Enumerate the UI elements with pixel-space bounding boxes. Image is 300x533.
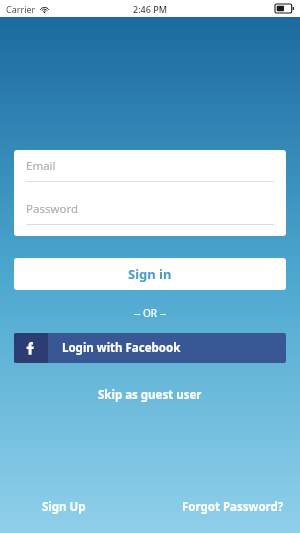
staticText: Sign in	[128, 265, 172, 283]
button[interactable]: Password	[26, 193, 274, 224]
staticText: Carrier	[6, 3, 36, 15]
staticText: 2:46 PM	[133, 3, 167, 15]
button[interactable]: Facebook	[14, 333, 286, 363]
staticText: Skip as guest user	[98, 387, 202, 403]
staticText: -- OR --	[134, 306, 167, 320]
staticText: Forgot Password?	[182, 499, 284, 515]
staticText: Email	[26, 158, 56, 174]
button[interactable]: Email	[26, 150, 274, 181]
staticText: Login with Facebook	[62, 340, 181, 356]
button[interactable]: Skip as guest user	[0, 383, 300, 407]
other: Facebook	[23, 340, 39, 356]
button[interactable]: Forgot Password?	[180, 495, 286, 519]
staticText: Sign Up	[42, 499, 86, 515]
button[interactable]: Sign Up	[14, 495, 114, 519]
button[interactable]: Sign in	[14, 258, 286, 290]
staticText: Password	[26, 201, 79, 217]
